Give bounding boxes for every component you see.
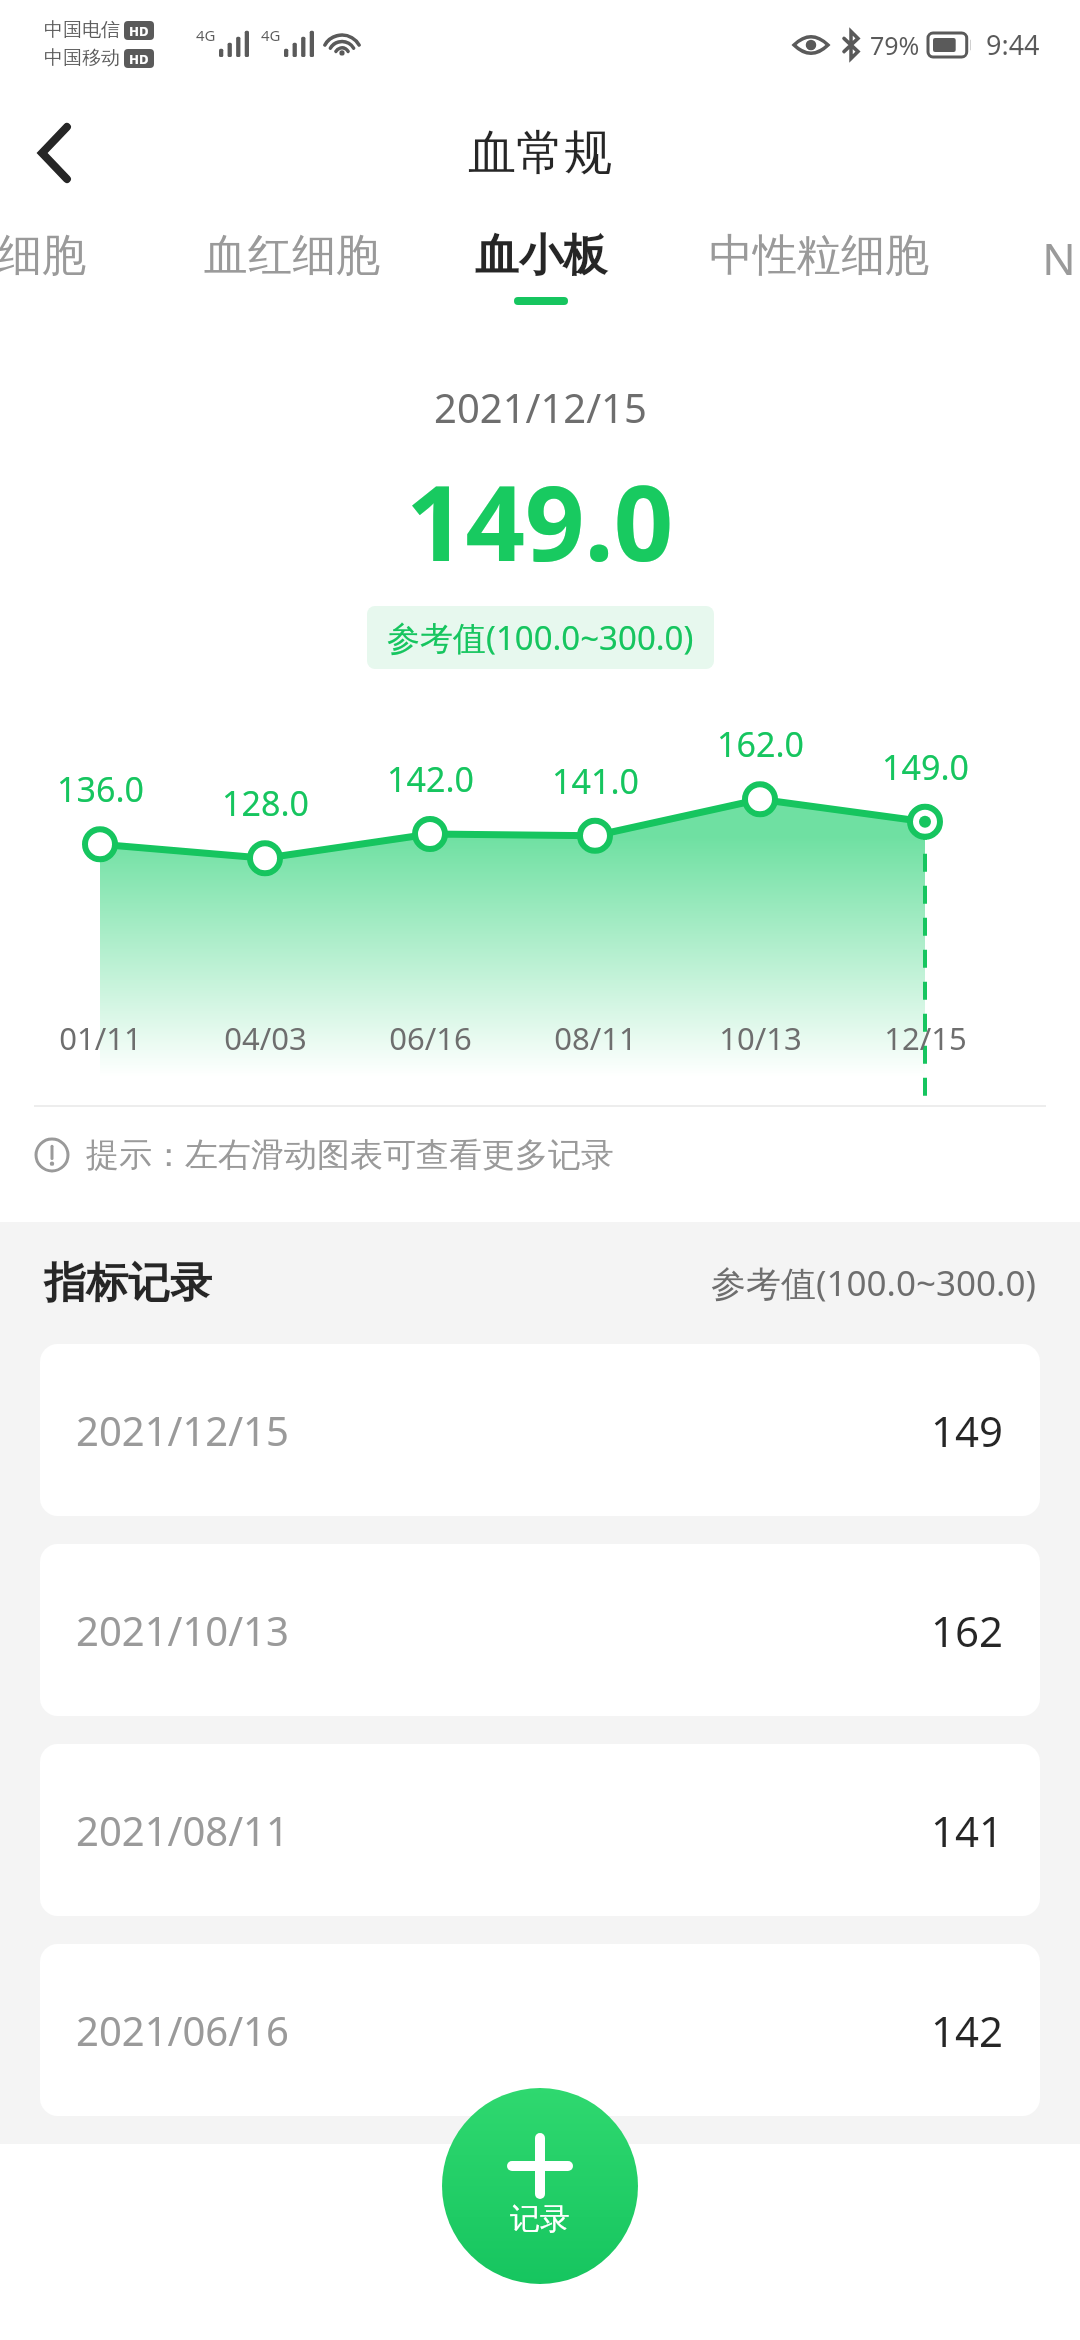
button[interactable]: 记录	[442, 2088, 638, 2284]
staticText: 08/11	[554, 1017, 637, 1059]
staticText: 10/13	[719, 1017, 802, 1059]
staticText: 01/11	[59, 1017, 142, 1059]
staticText: 记录	[510, 2200, 570, 2238]
staticText: 血小板	[475, 228, 607, 283]
staticText: 06/16	[389, 1017, 472, 1059]
staticText: 142	[931, 2002, 1004, 2059]
staticText: N	[1042, 228, 1076, 288]
staticText: 149	[931, 1402, 1004, 1459]
staticText: 149.0	[406, 450, 674, 592]
staticText: 12/15	[884, 1017, 967, 1059]
button[interactable]: 2021/06/16	[40, 1944, 1040, 2116]
staticText: 参考值(100.0~300.0)	[387, 615, 694, 660]
button[interactable]: 2021/12/15	[40, 1344, 1040, 1516]
staticText: 162.0	[717, 721, 804, 767]
staticText: 2021/10/13	[76, 1603, 289, 1657]
staticText: 中国电信	[44, 18, 120, 42]
staticText: 参考值(100.0~300.0)	[711, 1259, 1036, 1307]
staticText: 2021/06/16	[76, 2003, 289, 2057]
staticText: 79%	[870, 28, 920, 62]
staticText: 2021/12/15	[434, 380, 647, 434]
staticText: 2021/08/11	[76, 1803, 289, 1857]
staticText: 136.0	[57, 766, 144, 812]
staticText: 142.0	[387, 756, 474, 802]
staticText: 血常规	[468, 123, 612, 183]
button[interactable]: 2021/10/13	[40, 1544, 1040, 1716]
staticText: 指标记录	[44, 1257, 212, 1310]
staticText: 细胞	[0, 228, 86, 283]
button[interactable]: 血红细胞	[202, 218, 382, 358]
staticText: 141.0	[552, 758, 639, 804]
staticText: 9:44	[986, 26, 1040, 63]
button[interactable]: 细胞	[0, 218, 87, 358]
staticText: 149.0	[882, 744, 969, 790]
staticText: 141	[931, 1802, 1004, 1859]
staticText: HD	[129, 50, 149, 68]
staticText: 中性粒细胞	[709, 228, 929, 283]
button[interactable]: 返回	[0, 98, 110, 208]
button[interactable]: 中性粒细胞	[706, 218, 931, 358]
staticText: HD	[129, 22, 149, 40]
button[interactable]: 2021/08/11	[40, 1744, 1040, 1916]
button[interactable]: 血小板	[473, 218, 608, 358]
staticText: 162	[931, 1602, 1004, 1659]
staticText: 128.0	[222, 780, 309, 826]
staticText: 2021/12/15	[76, 1403, 289, 1457]
button[interactable]: N	[1036, 218, 1080, 358]
staticText: 血红细胞	[204, 228, 380, 283]
staticText: 4G	[261, 25, 281, 45]
staticText: 提示：左右滑动图表可查看更多记录	[86, 1134, 614, 1176]
staticText: 04/03	[224, 1017, 307, 1059]
staticText: 4G	[196, 25, 216, 45]
staticText: 中国移动	[44, 46, 120, 70]
